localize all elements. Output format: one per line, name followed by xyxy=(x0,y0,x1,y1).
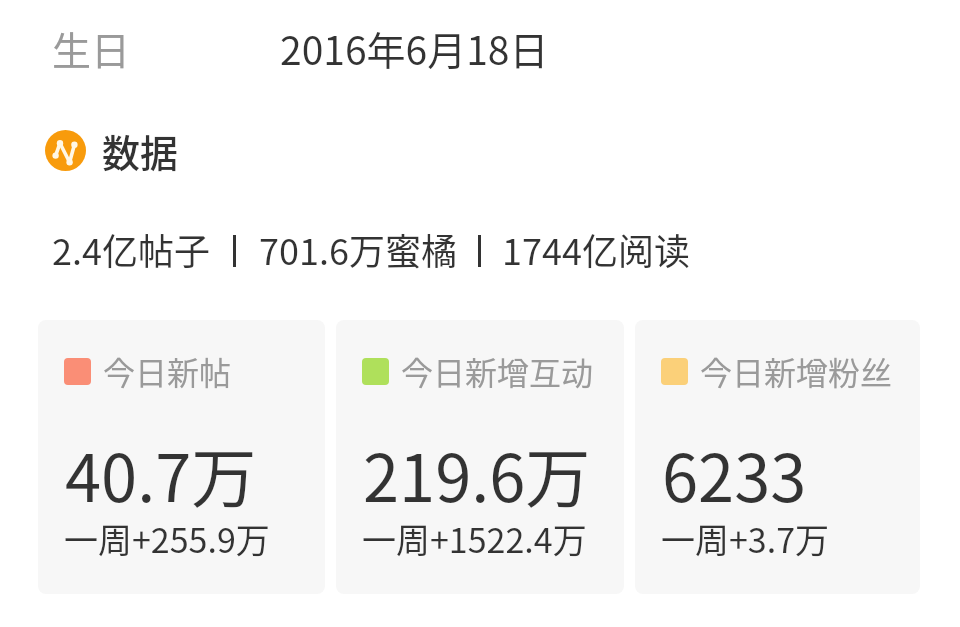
button[interactable]: 今日新帖 xyxy=(38,320,325,594)
staticText: 40.7万 xyxy=(65,427,257,521)
staticText: 1744亿阅读 xyxy=(502,223,690,275)
staticText: 2016年6月18日 xyxy=(280,20,549,76)
button[interactable]: 今日新增互动 xyxy=(336,320,624,594)
other: Data xyxy=(45,130,86,171)
staticText: 一周+1522.4万 xyxy=(362,514,587,563)
staticText: 701.6万蜜橘 xyxy=(259,223,457,275)
staticText: 今日新帖 xyxy=(103,348,232,394)
staticText: 2.4亿帖子 xyxy=(52,223,210,275)
staticText: 一周+3.7万 xyxy=(661,514,830,563)
staticText: 今日新增粉丝 xyxy=(700,348,893,394)
button[interactable]: 今日新增粉丝 xyxy=(635,320,920,594)
staticText: 今日新增互动 xyxy=(401,348,594,394)
staticText: 6233 xyxy=(662,427,807,521)
button[interactable]: Data xyxy=(45,123,179,178)
staticText: 一周+255.9万 xyxy=(64,514,270,563)
staticText: 219.6万 xyxy=(363,427,591,521)
staticText: 生日 xyxy=(52,20,131,76)
staticText: 数据 xyxy=(102,123,179,178)
